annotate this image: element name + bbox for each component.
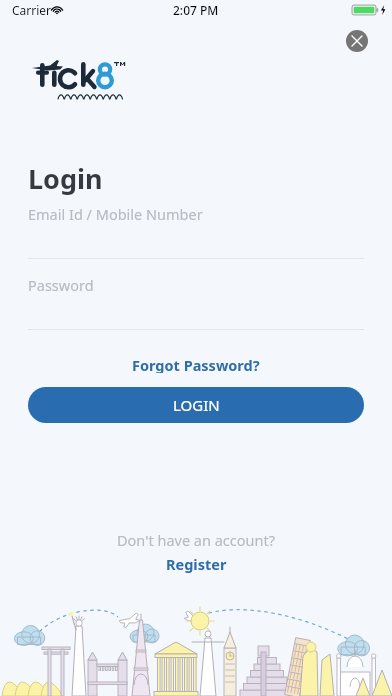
button[interactable]: Email Id / Mobile Number xyxy=(28,198,364,258)
staticText: Email Id / Mobile Number xyxy=(28,204,203,224)
staticText: Login xyxy=(28,160,103,197)
staticText: Carrier xyxy=(12,2,52,18)
button[interactable]: Register xyxy=(156,551,237,577)
staticText: Password xyxy=(28,275,94,295)
staticText: Register xyxy=(166,554,227,574)
staticText: 2:07 PM xyxy=(173,2,219,18)
button[interactable]: Close xyxy=(346,30,368,52)
button[interactable]: Forgot Password? xyxy=(124,352,268,376)
button[interactable]: LOGIN xyxy=(28,387,364,423)
button[interactable]: Password xyxy=(28,269,364,329)
staticText: LOGIN xyxy=(173,395,220,415)
staticText: Forgot Password? xyxy=(132,355,260,373)
staticText: Don't have an account? xyxy=(117,530,275,550)
